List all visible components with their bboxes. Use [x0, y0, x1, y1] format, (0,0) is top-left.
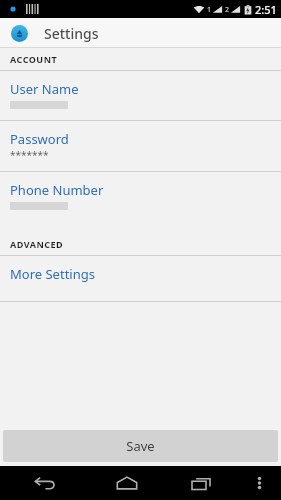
button[interactable]: Save	[3, 430, 278, 462]
staticText: Phone Number	[10, 181, 104, 199]
staticText: Save	[126, 437, 155, 455]
staticText: User Name	[10, 80, 79, 98]
button[interactable]: Back	[0, 466, 90, 500]
button[interactable]: Recent apps	[164, 466, 238, 500]
button[interactable]: Home	[90, 466, 164, 500]
button[interactable]: More options	[238, 466, 281, 500]
button[interactable]: Phone Number	[0, 172, 281, 221]
staticText: More Settings	[10, 265, 95, 283]
staticText: 1	[207, 5, 212, 15]
button[interactable]: User Name	[0, 71, 281, 120]
staticText: ADVANCED	[10, 238, 64, 250]
staticText: ACCOUNT	[10, 53, 58, 65]
staticText: Password	[10, 130, 69, 148]
button[interactable]: Password	[0, 121, 281, 171]
staticText: Settings	[44, 24, 99, 43]
button[interactable]: More Settings	[0, 256, 281, 301]
staticText: 2:51	[255, 2, 277, 17]
staticText: *******	[10, 148, 49, 162]
staticText: 2	[225, 5, 230, 15]
